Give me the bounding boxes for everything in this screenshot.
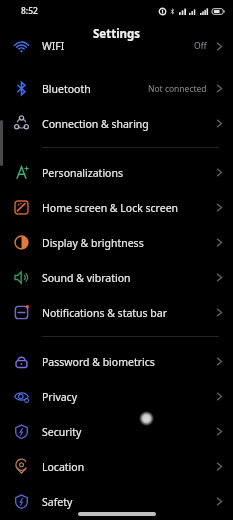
staticText: Personalizations xyxy=(42,166,213,180)
staticText: Display & brightness xyxy=(42,236,213,250)
staticText: WIFI xyxy=(42,39,194,53)
button[interactable]: Bluetooth xyxy=(0,71,233,106)
staticText: Location xyxy=(42,460,213,474)
button[interactable]: Sound & vibration xyxy=(0,260,233,295)
staticText: Notifications & status bar xyxy=(42,306,213,320)
button[interactable]: Display & brightness xyxy=(0,225,233,260)
button[interactable]: Safety xyxy=(0,484,233,519)
staticText: Password & biometrics xyxy=(42,355,213,369)
staticText: 8:52 xyxy=(21,5,38,17)
staticText: Home screen & Lock screen xyxy=(42,201,213,215)
staticText: Bluetooth xyxy=(42,82,148,96)
staticText: Not connected xyxy=(148,83,207,95)
button[interactable]: Password & biometrics xyxy=(0,344,233,379)
button[interactable]: WIFI xyxy=(0,37,233,55)
staticText: Connection & sharing xyxy=(42,117,213,131)
button[interactable]: Security xyxy=(0,414,233,449)
staticText: Safety xyxy=(42,495,213,509)
button[interactable]: Personalizations xyxy=(0,155,233,190)
button[interactable]: Home screen & Lock screen xyxy=(0,190,233,225)
staticText: Off xyxy=(194,40,207,52)
button[interactable]: Location xyxy=(0,449,233,484)
staticText: Sound & vibration xyxy=(42,271,213,285)
button[interactable]: Notifications & status bar xyxy=(0,295,233,330)
button[interactable]: Privacy xyxy=(0,379,233,414)
staticText: Privacy xyxy=(42,390,213,404)
button[interactable]: Connection & sharing xyxy=(0,106,233,141)
staticText: Settings xyxy=(93,26,141,42)
staticText: Security xyxy=(42,425,213,439)
